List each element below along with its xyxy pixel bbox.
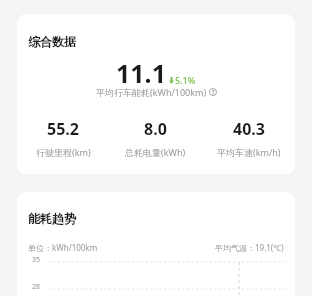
- button[interactable]: 能耗说明: [209, 88, 217, 96]
- staticText: 总耗电量(kWh): [125, 146, 186, 158]
- staticText: 35: [32, 255, 41, 265]
- button[interactable]: 55.2: [17, 118, 109, 158]
- button[interactable]: 40.3: [202, 118, 295, 158]
- staticText: 8.0: [144, 118, 167, 140]
- staticText: 能耗趋势: [28, 211, 76, 226]
- staticText: 5.1%: [175, 74, 196, 86]
- staticText: 综合数据: [28, 34, 76, 49]
- button[interactable]: 综合数据: [17, 14, 295, 174]
- staticText: 40.3: [233, 118, 265, 140]
- staticText: 28: [32, 282, 41, 292]
- button[interactable]: 8.0: [109, 118, 202, 158]
- staticText: 平均气温：19.1(℃): [215, 242, 284, 253]
- staticText: 平均车速(km/h): [217, 146, 281, 158]
- staticText: 单位：kWh/100km: [28, 242, 98, 253]
- button[interactable]: 能耗趋势: [17, 192, 295, 296]
- staticText: 55.2: [47, 118, 79, 140]
- staticText: 平均行车能耗(kWh/100km): [96, 86, 207, 98]
- staticText: 11.1: [116, 56, 166, 90]
- staticText: 行驶里程(km): [36, 146, 91, 158]
